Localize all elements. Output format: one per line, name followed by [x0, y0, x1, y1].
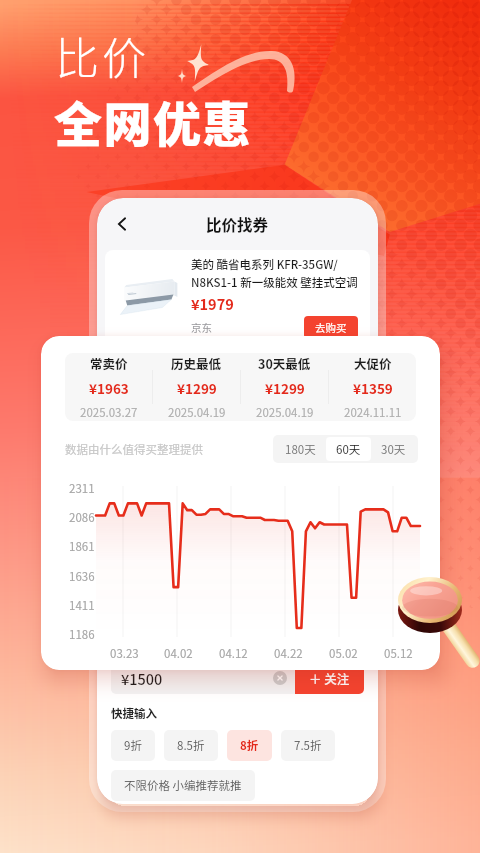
staticText: 京东 [191, 320, 212, 335]
staticText: 1411 [69, 597, 95, 614]
button[interactable]: 9折 [111, 730, 155, 761]
staticText: 2311 [69, 480, 95, 497]
button[interactable]: 不限价格 小编推荐就推 [111, 770, 255, 801]
staticText: 比价 [55, 24, 149, 88]
staticText: 8折 [240, 737, 259, 754]
staticText: 04.02 [164, 645, 193, 662]
staticText: 8.5折 [177, 737, 205, 754]
staticText: 1186 [69, 626, 95, 643]
staticText: 1636 [69, 568, 95, 585]
button[interactable]: Clear [273, 671, 287, 685]
button[interactable]: Back [109, 211, 135, 237]
staticText: 7.5折 [294, 737, 322, 754]
staticText: 04.22 [274, 645, 303, 662]
staticText: 03.23 [110, 645, 139, 662]
staticText: 05.12 [384, 645, 413, 662]
staticText: 30天最低 [258, 354, 311, 372]
staticText: 去购买 [315, 320, 347, 335]
staticText: 比价找券 [206, 213, 269, 235]
button[interactable]: 60天 [326, 437, 371, 461]
staticText: 2025.04.19 [256, 404, 314, 421]
button[interactable]: 8折 [227, 730, 272, 761]
staticText: ＋ 关注 [309, 669, 350, 687]
staticText: ¥1963 [89, 378, 129, 398]
staticText: 1861 [69, 538, 95, 555]
staticText: 60天 [336, 441, 361, 457]
button[interactable]: 8.5折 [164, 730, 218, 761]
staticText: 历史最低 [171, 354, 222, 372]
button[interactable]: 去购买 [304, 316, 358, 339]
staticText: 04.12 [219, 645, 248, 662]
staticText: 9折 [124, 737, 142, 754]
staticText: 2025.03.27 [80, 404, 138, 421]
button[interactable]: 7.5折 [281, 730, 335, 761]
button[interactable]: ＋ 关注 [295, 662, 364, 694]
staticText: 美的 酷省电系列 KFR-35GW/ N8KS1-1 新一级能效 壁挂式空调 [191, 256, 358, 290]
staticText: ¥1979 [191, 293, 234, 314]
staticText: 05.02 [329, 645, 358, 662]
staticText: 不限价格 小编推荐就推 [124, 777, 242, 794]
staticText: ¥1299 [177, 378, 217, 398]
button[interactable]: ¥1500 [111, 662, 295, 694]
staticText: ¥1299 [265, 378, 305, 398]
staticText: 全网优惠 [54, 86, 253, 156]
staticText: 常卖价 [90, 354, 128, 372]
button[interactable]: 30天 [371, 437, 416, 461]
staticText: 数据由什么值得买整理提供 [65, 441, 203, 458]
staticText: ¥1500 [121, 668, 163, 689]
staticText: 30天 [381, 441, 406, 457]
staticText: 快捷输入 [111, 705, 157, 722]
button[interactable]: 180天 [275, 437, 326, 461]
staticText: 大促价 [354, 354, 392, 372]
staticText: 180天 [285, 441, 316, 457]
staticText: ¥1359 [353, 378, 393, 398]
staticText: 2086 [69, 509, 95, 526]
staticText: 2025.04.19 [168, 404, 226, 421]
staticText: 2024.11.11 [344, 404, 402, 421]
